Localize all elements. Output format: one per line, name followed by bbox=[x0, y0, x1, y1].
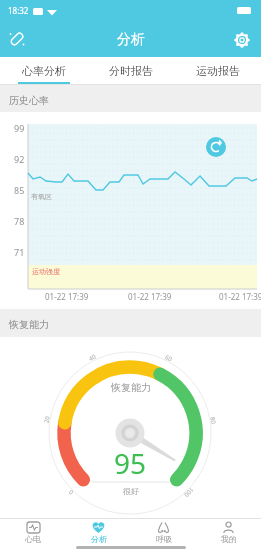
button[interactable] bbox=[4, 27, 30, 53]
staticText: 99 bbox=[14, 122, 25, 134]
button[interactable]: 运动报告 bbox=[174, 57, 261, 84]
button[interactable] bbox=[206, 137, 226, 157]
button[interactable]: 分时报告 bbox=[87, 57, 174, 84]
staticText: 运动报告 bbox=[196, 64, 240, 78]
staticText: 0 bbox=[67, 488, 75, 496]
staticText: 有氧区 bbox=[31, 192, 52, 201]
staticText: 01-22 17:39 bbox=[45, 291, 89, 302]
button[interactable]: 分析 bbox=[66, 519, 131, 550]
button[interactable]: 心电 bbox=[0, 519, 66, 550]
staticText: 呼吸 bbox=[156, 534, 172, 544]
staticText: 92 bbox=[14, 153, 25, 165]
staticText: 100 bbox=[182, 486, 195, 499]
staticText: 40 bbox=[87, 353, 97, 363]
staticText: 恢复能力 bbox=[9, 318, 49, 331]
staticText: 78 bbox=[14, 215, 25, 227]
button[interactable]: 呼吸 bbox=[131, 519, 196, 550]
staticText: 历史心率 bbox=[9, 94, 49, 107]
staticText: 分析 bbox=[91, 534, 107, 544]
staticText: 71 bbox=[14, 246, 25, 258]
staticText: 很好 bbox=[123, 486, 139, 496]
button[interactable]: 我的 bbox=[196, 519, 261, 550]
staticText: 运动强度 bbox=[32, 267, 60, 276]
button[interactable] bbox=[234, 32, 250, 48]
staticText: 我的 bbox=[221, 534, 237, 544]
staticText: 分析 bbox=[117, 31, 145, 49]
staticText: 恢复能力 bbox=[111, 381, 151, 394]
staticText: 60 bbox=[163, 353, 173, 363]
staticText: 20 bbox=[43, 415, 52, 424]
staticText: 心电 bbox=[25, 534, 41, 544]
staticText: 18:32 bbox=[8, 5, 29, 16]
button[interactable]: 心率分析 bbox=[0, 57, 87, 84]
staticText: 01-22 17:39 bbox=[219, 291, 261, 302]
staticText: 心率分析 bbox=[22, 64, 66, 78]
staticText: 80 bbox=[209, 416, 218, 425]
staticText: 分时报告 bbox=[109, 64, 153, 78]
staticText: 95 bbox=[114, 444, 147, 482]
staticText: 01-22 17:39 bbox=[128, 291, 172, 302]
staticText: 85 bbox=[14, 184, 25, 196]
